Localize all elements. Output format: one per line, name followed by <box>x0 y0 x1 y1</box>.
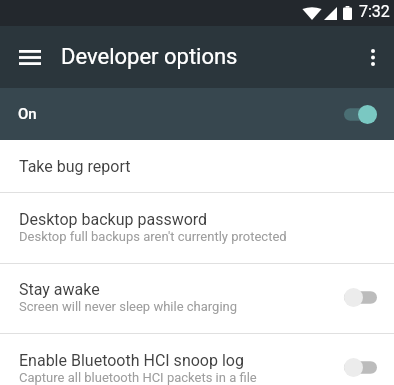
staticText: Developer options <box>61 44 238 70</box>
button[interactable]: Desktop backup password <box>0 193 394 263</box>
staticText: 7:32 <box>359 2 390 21</box>
button[interactable]: Enable Bluetooth HCI snoop log <box>0 334 394 385</box>
staticText: Take bug report <box>19 157 131 176</box>
staticText: Capture all bluetooth HCI packets in a f… <box>19 370 257 385</box>
button[interactable]: On <box>0 88 394 140</box>
button[interactable]: Navigation menu <box>10 37 50 77</box>
button[interactable]: Take bug report <box>0 140 394 192</box>
staticText: Screen will never sleep while charging <box>19 299 238 314</box>
staticText: Desktop backup password <box>19 210 208 229</box>
staticText: Stay awake <box>19 280 100 299</box>
button[interactable]: More options <box>353 37 393 77</box>
staticText: On <box>18 105 37 123</box>
staticText: Desktop full backups aren't currently pr… <box>19 229 287 244</box>
button[interactable]: Stay awake <box>0 264 394 333</box>
staticText: Enable Bluetooth HCI snoop log <box>19 351 244 370</box>
